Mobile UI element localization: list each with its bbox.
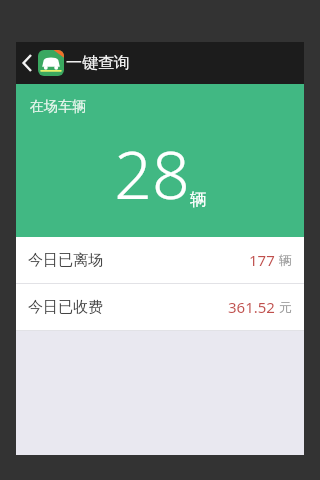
staticText: 今日已离场 bbox=[28, 251, 103, 270]
staticText: 28 bbox=[114, 128, 190, 218]
staticText: 一键查询 bbox=[66, 53, 130, 73]
staticText: 361.52 bbox=[228, 297, 275, 317]
button[interactable]: 今日已收费 bbox=[16, 284, 304, 330]
staticText: 在场车辆 bbox=[30, 98, 86, 116]
staticText: 177 bbox=[249, 250, 275, 270]
staticText: 元 bbox=[279, 299, 292, 315]
button[interactable]: 在场车辆 bbox=[16, 84, 304, 237]
button[interactable]: 今日已离场 bbox=[16, 237, 304, 283]
staticText: 辆 bbox=[279, 252, 292, 268]
staticText: 辆 bbox=[190, 189, 207, 210]
button[interactable]: App icon bbox=[38, 50, 64, 76]
staticText: 今日已收费 bbox=[28, 298, 103, 317]
button[interactable]: Back bbox=[16, 42, 38, 84]
